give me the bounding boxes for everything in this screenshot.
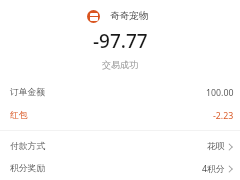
- staticText: 100.00: [206, 87, 234, 99]
- other: 奇奇宠物 商家头像: [87, 10, 100, 23]
- staticText: 花呗: [207, 141, 225, 152]
- staticText: 红包: [10, 110, 28, 121]
- button[interactable]: 红包: [0, 104, 240, 127]
- staticText: 付款方式: [10, 141, 46, 152]
- staticText: 订单金额: [10, 87, 46, 98]
- staticText: 交易成功: [102, 59, 138, 70]
- button[interactable]: 奇奇宠物 商家头像: [87, 9, 149, 23]
- staticText: -2.23: [213, 110, 234, 122]
- staticText: 积分奖励: [10, 163, 46, 174]
- staticText: 奇奇宠物: [110, 10, 149, 22]
- staticText: -97.77: [93, 28, 148, 48]
- button[interactable]: 订单金额: [0, 81, 240, 104]
- button[interactable]: 付款方式: [0, 135, 240, 158]
- button[interactable]: 积分奖励: [0, 157, 240, 180]
- staticText: 4积分: [202, 163, 225, 175]
